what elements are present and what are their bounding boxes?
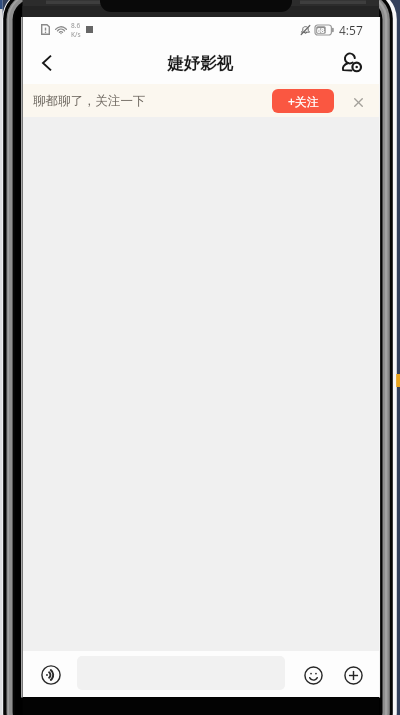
staticText: K/s bbox=[71, 30, 81, 39]
staticText: 婕妤影视 bbox=[167, 53, 233, 74]
button[interactable]: Voice message bbox=[39, 663, 63, 687]
button[interactable]: Back bbox=[33, 47, 61, 79]
staticText: 聊都聊了，关注一下 bbox=[33, 93, 146, 109]
button[interactable]: +关注 bbox=[272, 89, 334, 113]
button[interactable]: Emoji bbox=[302, 664, 324, 686]
staticText: +关注 bbox=[288, 93, 319, 109]
button[interactable]: Close bbox=[350, 94, 366, 110]
staticText: 4:57 bbox=[339, 22, 363, 38]
button[interactable]: More bbox=[342, 664, 364, 686]
button[interactable]: Contact info bbox=[337, 48, 367, 78]
staticText: 68 bbox=[317, 26, 325, 35]
staticText: 8.6 bbox=[71, 21, 81, 30]
